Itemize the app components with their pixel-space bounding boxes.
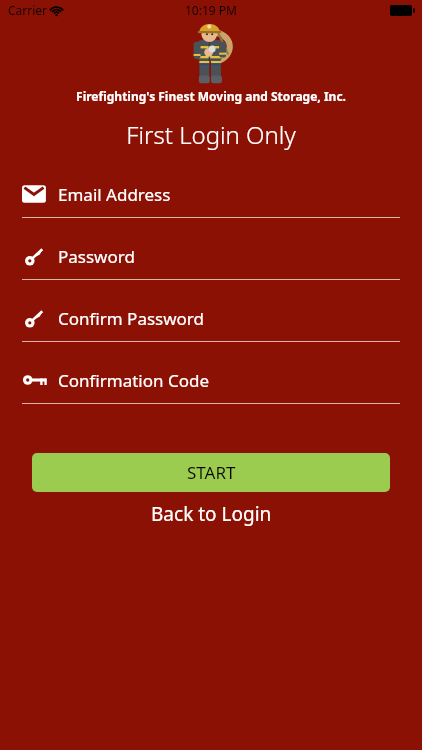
staticText: First Login Only <box>0 118 422 151</box>
staticText: 10:19 PM <box>185 2 237 18</box>
button[interactable]: Confirmation Code <box>0 357 422 419</box>
staticText: Back to Login <box>151 501 272 527</box>
staticText: Email Address <box>58 183 171 206</box>
button[interactable]: Back to Login <box>0 501 422 527</box>
button[interactable]: Confirm Password <box>0 295 422 357</box>
staticText: Firefighting's Finest Moving and Storage… <box>0 88 422 104</box>
other: Confirm Password <box>22 306 48 330</box>
staticText: Confirmation Code <box>58 369 210 392</box>
staticText: START <box>187 461 236 484</box>
other: Password <box>22 244 48 268</box>
button[interactable]: Email Address <box>0 171 422 233</box>
staticText: Confirm Password <box>58 307 204 330</box>
other: Email Address <box>22 182 48 206</box>
other: Confirmation Code <box>22 368 48 392</box>
button[interactable]: Password <box>0 233 422 295</box>
staticText: Password <box>58 245 135 268</box>
staticText: Carrier <box>8 2 48 18</box>
button[interactable]: START <box>32 453 390 492</box>
